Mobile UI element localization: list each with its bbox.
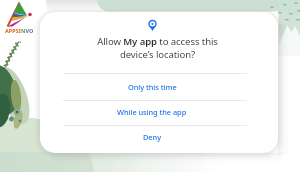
staticText: Allow My app to access this device’s loc… — [97, 35, 218, 61]
staticText: While using the app — [117, 107, 187, 117]
staticText: APPSINVO — [5, 27, 34, 34]
staticText: Deny — [143, 132, 161, 142]
staticText: Only this time — [128, 82, 177, 92]
